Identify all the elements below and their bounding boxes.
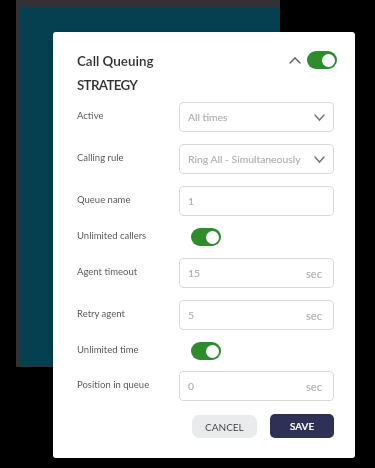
staticText: Ring All - Simultaneously: [188, 153, 301, 165]
staticText: Position in queue: [77, 379, 150, 390]
button[interactable]: Unlimited callers: [191, 228, 221, 246]
button[interactable]: SAVE: [270, 414, 334, 438]
button[interactable]: Unlimited time: [191, 342, 221, 360]
staticText: sec: [306, 380, 323, 393]
staticText: Unlimited callers: [77, 230, 147, 241]
staticText: 15: [188, 267, 201, 279]
button[interactable]: Ring All - Simultaneously: [179, 144, 334, 174]
staticText: sec: [306, 267, 323, 280]
staticText: SAVE: [290, 420, 315, 432]
button[interactable]: 15: [179, 258, 334, 288]
staticText: Calling rule: [77, 152, 124, 163]
button[interactable]: 0: [179, 371, 334, 401]
button[interactable]: 5: [179, 300, 334, 330]
staticText: Queue name: [77, 194, 131, 205]
staticText: Unlimited time: [77, 344, 139, 355]
staticText: All times: [188, 111, 228, 123]
staticText: CANCEL: [205, 421, 244, 433]
staticText: Retry agent: [77, 308, 125, 319]
staticText: sec: [306, 309, 323, 322]
button[interactable]: 1: [179, 186, 334, 216]
staticText: 5: [188, 309, 195, 321]
staticText: STRATEGY: [77, 77, 138, 93]
button[interactable]: Enable call queuing: [307, 51, 337, 69]
staticText: 1: [188, 195, 195, 207]
staticText: Agent timeout: [77, 266, 138, 277]
button[interactable]: CANCEL: [192, 415, 257, 438]
button[interactable]: Collapse section: [285, 51, 304, 68]
button[interactable]: All times: [179, 102, 334, 132]
staticText: 0: [188, 380, 195, 392]
staticText: Call Queuing: [77, 53, 154, 69]
staticText: Active: [77, 110, 104, 121]
